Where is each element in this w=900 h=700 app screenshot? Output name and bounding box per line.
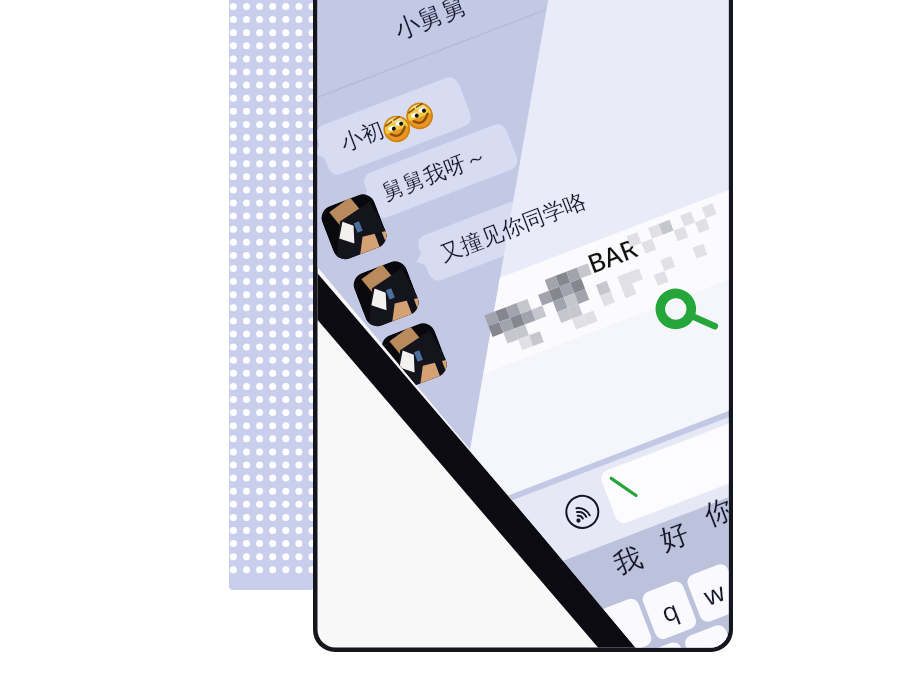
button[interactable]: Chat screenshot illustration	[0, 0, 900, 700]
